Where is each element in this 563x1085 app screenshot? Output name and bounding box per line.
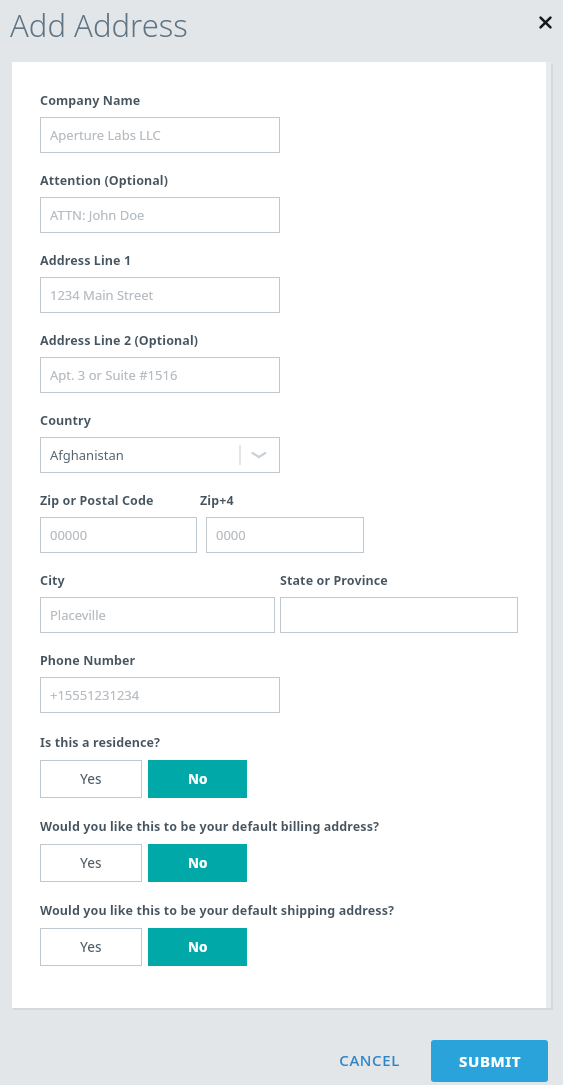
staticText: SUBMIT: [459, 1051, 521, 1071]
staticText: Phone Number: [40, 652, 136, 669]
staticText: Address Line 1: [40, 252, 132, 269]
button[interactable]: +15551231234: [40, 677, 280, 713]
button[interactable]: No: [148, 760, 247, 798]
button[interactable]: CANCEL: [322, 1040, 416, 1080]
staticText: 1234 Main Street: [50, 286, 154, 304]
button[interactable]: Close: [528, 5, 562, 39]
staticText: Placeville: [50, 606, 106, 624]
staticText: Yes: [80, 854, 102, 872]
staticText: Company Name: [40, 92, 141, 109]
button[interactable]: Apt. 3 or Suite #1516: [40, 357, 280, 393]
button[interactable]: 1234 Main Street: [40, 277, 280, 313]
button[interactable]: Aperture Labs LLC: [40, 117, 280, 153]
staticText: Zip+4: [200, 492, 234, 509]
staticText: Address Line 2 (Optional): [40, 332, 199, 349]
staticText: Would you like this to be your default s…: [40, 902, 395, 919]
staticText: State or Province: [280, 572, 388, 589]
button[interactable]: ATTN: John Doe: [40, 197, 280, 233]
button[interactable]: [280, 597, 518, 633]
staticText: Aperture Labs LLC: [50, 126, 161, 144]
staticText: No: [188, 770, 208, 788]
staticText: Add Address: [10, 4, 188, 46]
staticText: 0000: [216, 526, 246, 544]
staticText: Attention (Optional): [40, 172, 169, 189]
staticText: Zip or Postal Code: [40, 492, 200, 509]
staticText: Yes: [80, 770, 102, 788]
staticText: Country: [40, 412, 91, 429]
staticText: Afghanistan: [50, 446, 124, 464]
staticText: +15551231234: [50, 686, 140, 704]
button[interactable]: Yes: [40, 928, 142, 966]
staticText: No: [188, 854, 208, 872]
staticText: Apt. 3 or Suite #1516: [50, 366, 178, 384]
button[interactable]: 00000: [40, 517, 197, 553]
button[interactable]: SUBMIT: [431, 1040, 548, 1082]
staticText: ATTN: John Doe: [50, 206, 145, 224]
button[interactable]: Placeville: [40, 597, 275, 633]
staticText: CANCEL: [339, 1050, 400, 1070]
staticText: Is this a residence?: [40, 734, 161, 751]
button[interactable]: No: [148, 844, 247, 882]
staticText: 00000: [50, 526, 88, 544]
button[interactable]: Yes: [40, 760, 142, 798]
button[interactable]: 0000: [206, 517, 364, 553]
staticText: Would you like this to be your default b…: [40, 818, 380, 835]
button[interactable]: No: [148, 928, 247, 966]
button[interactable]: Yes: [40, 844, 142, 882]
staticText: No: [188, 938, 208, 956]
staticText: Yes: [80, 938, 102, 956]
staticText: City: [40, 572, 280, 589]
button[interactable]: Afghanistan: [40, 437, 280, 473]
